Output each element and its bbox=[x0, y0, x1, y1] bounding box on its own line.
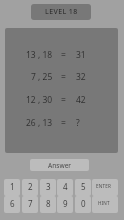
button[interactable]: 8 bbox=[40, 196, 56, 213]
button[interactable]: HINT bbox=[92, 196, 118, 213]
staticText: 42 bbox=[76, 94, 86, 106]
staticText: 5 bbox=[81, 181, 86, 192]
staticText: 6 bbox=[10, 198, 15, 209]
staticText: 32 bbox=[76, 71, 86, 83]
button[interactable]: 9 bbox=[57, 196, 73, 213]
button[interactable]: 6 bbox=[4, 196, 20, 213]
staticText: = bbox=[61, 49, 66, 61]
staticText: 7 bbox=[28, 198, 33, 209]
button[interactable]: 7 bbox=[22, 196, 38, 213]
button[interactable]: 0 bbox=[75, 196, 91, 213]
staticText: 4 bbox=[63, 181, 68, 192]
staticText: = bbox=[61, 117, 66, 129]
staticText: 7 , 25 bbox=[31, 71, 53, 83]
staticText: 8 bbox=[46, 198, 51, 209]
staticText: = bbox=[61, 71, 66, 83]
staticText: 31 bbox=[76, 49, 86, 61]
button[interactable]: 1 bbox=[4, 179, 20, 196]
staticText: = bbox=[61, 94, 66, 106]
button[interactable]: 3 bbox=[40, 179, 56, 196]
staticText: 12 , 30 bbox=[26, 94, 53, 106]
button[interactable]: ENTER bbox=[92, 179, 118, 196]
staticText: 0 bbox=[81, 198, 86, 209]
button[interactable]: Answer bbox=[30, 159, 89, 171]
staticText: Answer bbox=[48, 161, 72, 170]
button[interactable]: 5 bbox=[75, 179, 91, 196]
staticText: HINT bbox=[98, 200, 110, 206]
staticText: 2 bbox=[28, 181, 33, 192]
staticText: 13 , 18 bbox=[26, 49, 53, 61]
staticText: 26 , 13 bbox=[26, 117, 53, 129]
staticText: 9 bbox=[63, 198, 68, 209]
button[interactable]: LEVEL 18 bbox=[31, 4, 91, 20]
staticText: 3 bbox=[46, 181, 51, 192]
staticText: ENTER bbox=[96, 183, 112, 189]
staticText: ? bbox=[76, 117, 80, 129]
button[interactable]: 2 bbox=[22, 179, 38, 196]
staticText: 1 bbox=[10, 181, 15, 192]
button[interactable]: 4 bbox=[57, 179, 73, 196]
staticText: LEVEL 18 bbox=[45, 7, 78, 17]
